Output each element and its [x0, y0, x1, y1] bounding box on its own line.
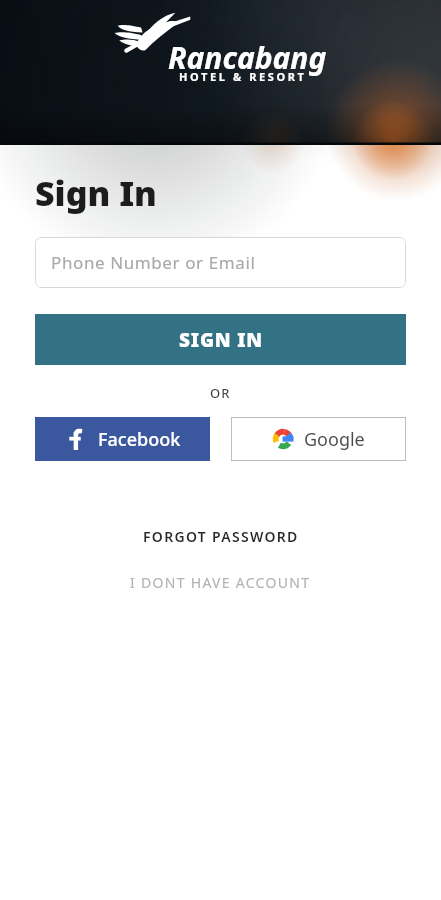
button[interactable]: Phone Number or Email	[35, 237, 406, 288]
button[interactable]: Google	[231, 417, 406, 461]
staticText: Facebook	[98, 427, 181, 452]
staticText: HOTEL & RESORT	[179, 69, 307, 84]
staticText: SIGN IN	[179, 327, 263, 353]
staticText: Rancabango	[168, 37, 328, 91]
button[interactable]: Facebook	[35, 417, 210, 461]
staticText: OR	[210, 384, 231, 402]
staticText: Sign In	[35, 170, 157, 216]
button[interactable]: I DONT HAVE ACCOUNT	[0, 567, 441, 598]
button[interactable]: SIGN IN	[35, 314, 406, 365]
staticText: I DONT HAVE ACCOUNT	[130, 573, 311, 592]
staticText: FORGOT PASSWORD	[143, 527, 299, 546]
staticText: Phone Number or Email	[51, 251, 256, 274]
button[interactable]: FORGOT PASSWORD	[0, 521, 441, 552]
staticText: Google	[304, 427, 365, 452]
